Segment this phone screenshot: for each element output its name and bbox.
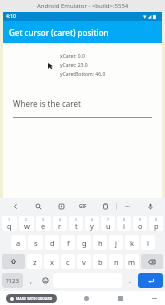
staticText: j — [115, 238, 117, 248]
staticText: . — [129, 276, 131, 286]
button[interactable]: m — [125, 254, 139, 269]
staticText: 6 — [91, 217, 94, 222]
staticText: o — [138, 221, 143, 231]
staticText: d — [50, 238, 55, 248]
staticText: b — [98, 257, 103, 267]
staticText: 4 — [59, 217, 62, 222]
staticText: a — [16, 238, 21, 248]
staticText: 0 — [155, 217, 158, 222]
staticText: v — [82, 257, 86, 267]
button[interactable]: d — [45, 235, 59, 250]
button[interactable]: Clipboard — [94, 198, 116, 214]
staticText: Where is the caret — [13, 98, 81, 109]
staticText: MADE WITH GBOARD — [16, 296, 53, 301]
button[interactable]: Get cursor (caret) position — [3, 21, 162, 43]
button[interactable]: Emoji — [38, 272, 52, 289]
staticText: 7 — [107, 217, 110, 222]
button[interactable]: 2 — [19, 216, 34, 231]
staticText: g — [82, 238, 87, 248]
button[interactable]: 8 — [117, 216, 131, 231]
button[interactable]: . — [123, 272, 137, 289]
button[interactable]: Stickers — [50, 198, 72, 214]
staticText: f — [67, 238, 70, 248]
staticText: y — [90, 221, 94, 231]
staticText: c — [66, 257, 70, 267]
staticText: 1 — [8, 217, 11, 222]
button[interactable]: s — [28, 235, 43, 250]
button[interactable]: Back — [149, 293, 159, 303]
button[interactable]: GIF — [72, 198, 94, 214]
button[interactable]: Backspace — [141, 254, 163, 269]
button[interactable]: Voice input — [139, 198, 161, 214]
staticText: 9 — [139, 217, 142, 222]
staticText: r — [58, 221, 62, 231]
staticText: e — [41, 221, 46, 231]
staticText: , — [30, 276, 32, 286]
button[interactable]: v — [77, 254, 91, 269]
staticText: k — [130, 238, 135, 248]
staticText: yCaret: 23.0 — [60, 62, 88, 69]
button[interactable]: 7 — [101, 216, 115, 231]
staticText: u — [106, 221, 111, 231]
button[interactable]: 1 — [2, 216, 17, 231]
button[interactable]: c — [61, 254, 75, 269]
button[interactable]: MADE WITH GBOARD — [10, 296, 53, 301]
staticText: 4:10 — [6, 13, 16, 20]
staticText: q — [7, 221, 12, 231]
staticText: w — [24, 221, 30, 231]
button[interactable]: j — [109, 235, 123, 250]
button[interactable]: , — [24, 272, 38, 289]
button[interactable]: g — [77, 235, 91, 250]
staticText: i — [123, 221, 125, 231]
button[interactable]: 4 — [53, 216, 67, 231]
button[interactable]: 3 — [36, 216, 51, 231]
button[interactable]: 6 — [85, 216, 99, 231]
button[interactable]: More — [117, 198, 139, 214]
button[interactable]: Enter — [138, 273, 163, 288]
button[interactable]: f — [61, 235, 75, 250]
button[interactable]: Back — [4, 198, 27, 214]
staticText: h — [98, 238, 103, 248]
button[interactable]: Where is the caret — [13, 98, 152, 118]
button[interactable]: n — [109, 254, 123, 269]
button[interactable]: Recents — [115, 293, 125, 303]
staticText: n — [114, 257, 119, 267]
button[interactable]: l — [141, 235, 155, 250]
staticText: z — [33, 257, 37, 267]
button[interactable]: Home — [81, 293, 91, 303]
button[interactable]: h — [93, 235, 107, 250]
button[interactable]: Shift — [2, 254, 25, 269]
staticText: ··· — [125, 202, 131, 210]
button[interactable]: z — [27, 254, 42, 269]
button[interactable]: x — [44, 254, 59, 269]
staticText: m — [128, 257, 136, 267]
button[interactable]: 5 — [69, 216, 83, 231]
staticText: yCaretBottom: 46.0 — [60, 71, 106, 78]
staticText: ?123 — [6, 277, 19, 285]
staticText: GIF — [79, 203, 87, 209]
staticText: Android Emulator - <build>:5554 — [37, 2, 129, 10]
staticText: 3 — [42, 217, 45, 222]
staticText: p — [154, 221, 159, 231]
staticText: x — [50, 257, 54, 267]
button[interactable]: k — [125, 235, 139, 250]
button[interactable]: 9 — [133, 216, 147, 231]
staticText: 8 — [123, 217, 126, 222]
staticText: 2 — [25, 217, 28, 222]
button[interactable]: ?123 — [2, 273, 23, 288]
button[interactable]: 0 — [149, 216, 163, 231]
staticText: xCaret: 0.0 — [60, 53, 85, 60]
staticText: s — [34, 238, 38, 248]
staticText: l — [147, 238, 149, 248]
staticText: t — [75, 221, 78, 231]
staticText: Get cursor (caret) position — [9, 27, 109, 38]
staticText: 5 — [75, 217, 78, 222]
button[interactable]: a — [11, 235, 26, 250]
button[interactable]: b — [93, 254, 107, 269]
button[interactable]: Search — [27, 198, 50, 214]
